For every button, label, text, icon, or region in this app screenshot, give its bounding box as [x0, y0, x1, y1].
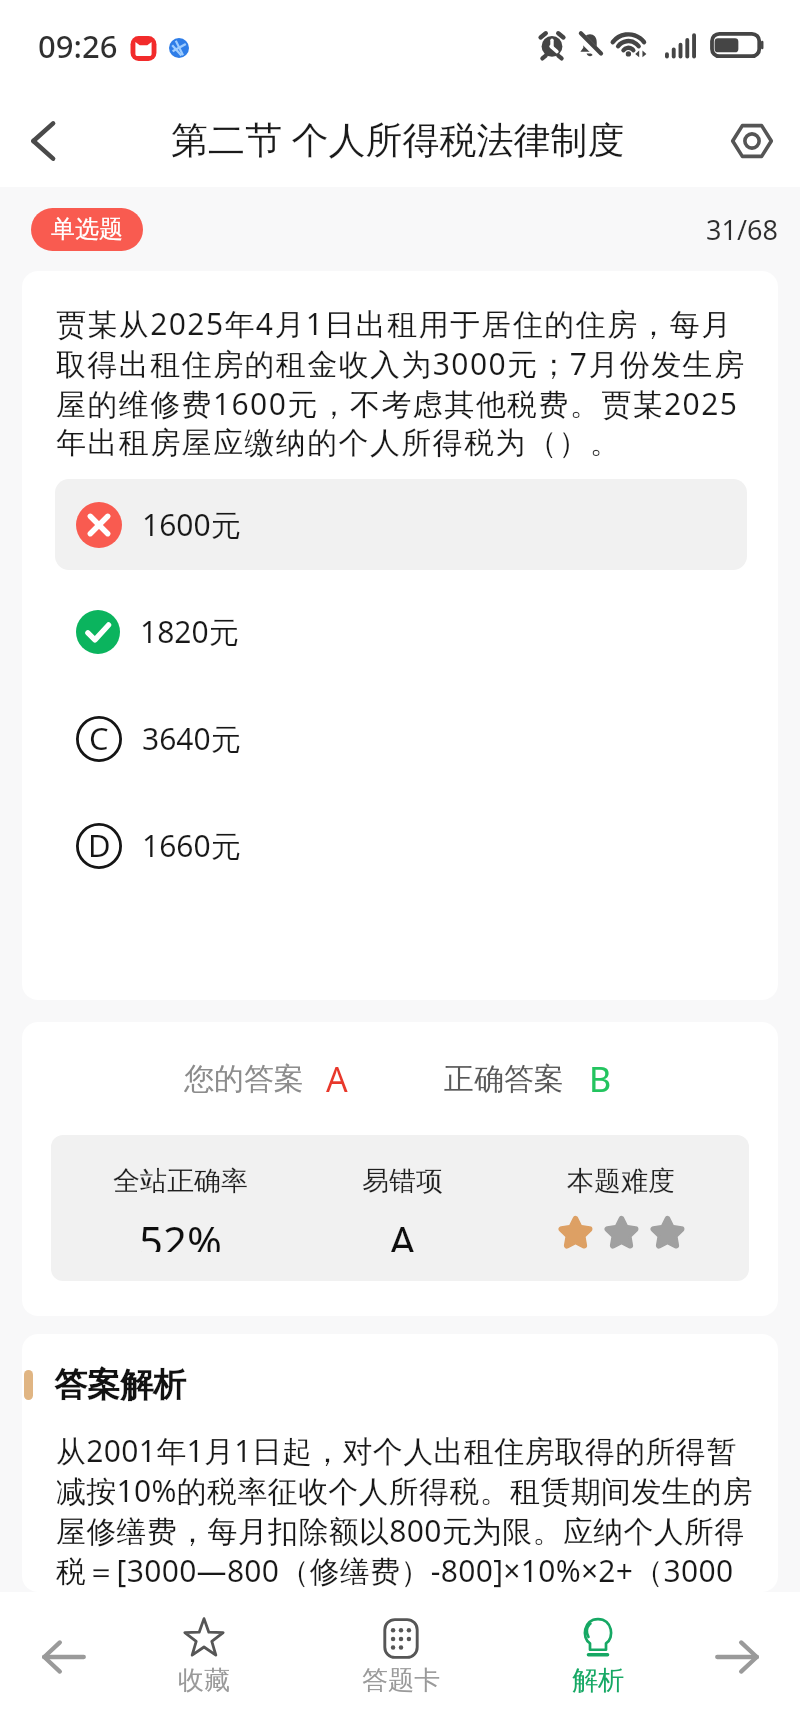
button[interactable]: 单选题 — [31, 208, 143, 251]
button[interactable]: 1600元 — [55, 479, 747, 570]
staticText: C — [89, 717, 109, 759]
staticText: 从2001年1月1日起，对个人出租住房取得的所得暂减按10%的税率征收个人所得税… — [56, 1432, 756, 1592]
staticText: 全站正确率 — [113, 1164, 248, 1198]
staticText: 贾某从2025年4月1日出租用于居住的住房，每月取得出租住房的租金收入为3000… — [56, 304, 749, 463]
staticText: 本题难度 — [567, 1164, 675, 1198]
button[interactable]: Previous question — [0, 1592, 128, 1721]
staticText: 第二节 个人所得税法律制度 — [171, 113, 625, 164]
staticText: 易错项 — [362, 1164, 443, 1198]
staticText: 3640元 — [142, 718, 241, 759]
staticText: 单选题 — [51, 215, 123, 244]
staticText: 31/68 — [706, 211, 778, 248]
button[interactable]: 1820元 — [55, 586, 747, 677]
staticText: 答题卡 — [362, 1664, 440, 1697]
button[interactable]: C — [55, 693, 747, 784]
button[interactable]: 答题卡 — [279, 1592, 523, 1721]
button[interactable]: Settings — [722, 111, 782, 171]
button[interactable]: D — [55, 800, 747, 891]
staticText: 1820元 — [140, 611, 239, 652]
staticText: B — [589, 1056, 612, 1102]
staticText: A — [389, 1212, 416, 1252]
staticText: 解析 — [572, 1664, 624, 1697]
staticText: 正确答案 — [444, 1060, 564, 1098]
staticText: 收藏 — [178, 1664, 230, 1697]
button[interactable]: Back — [11, 109, 75, 173]
staticText: 您的答案 — [184, 1060, 304, 1098]
button[interactable]: 收藏 — [128, 1592, 279, 1721]
button[interactable]: 解析 — [523, 1592, 673, 1721]
staticText: D — [88, 824, 111, 866]
staticText: 09:26 — [38, 30, 118, 66]
staticText: 答案解析 — [54, 1364, 186, 1406]
button[interactable]: Next question — [673, 1592, 800, 1721]
staticText: 52% — [139, 1212, 222, 1252]
staticText: A — [326, 1056, 348, 1102]
staticText: 1660元 — [142, 825, 241, 866]
staticText: 1600元 — [142, 504, 241, 545]
